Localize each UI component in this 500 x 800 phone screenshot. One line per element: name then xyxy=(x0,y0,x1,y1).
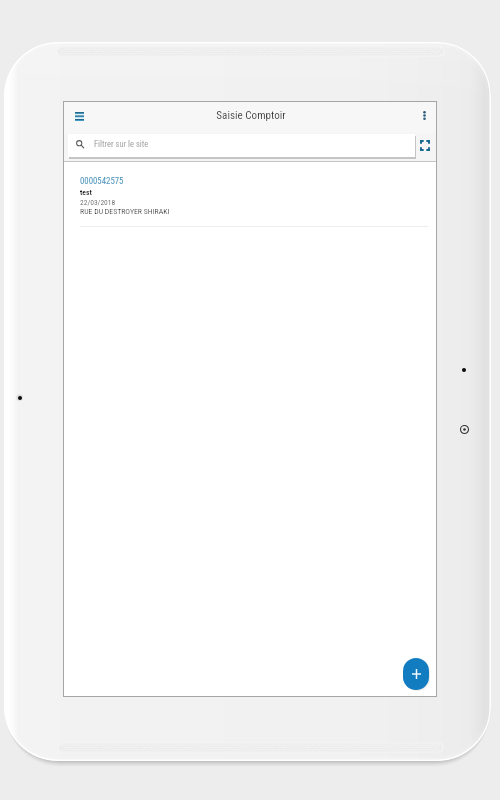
button[interactable]: Filtrer sur le site xyxy=(68,134,415,157)
staticText: 0000542575 xyxy=(80,176,124,186)
staticText: 22/03/2018 xyxy=(80,198,116,207)
button[interactable]: 0000542575 xyxy=(64,162,436,227)
staticText: Saisie Comptoir xyxy=(216,109,286,122)
button[interactable]: Add new entry xyxy=(403,658,429,690)
button[interactable]: More options xyxy=(413,104,435,126)
button[interactable]: Scan barcode xyxy=(414,134,436,156)
staticText: test xyxy=(80,188,92,197)
staticText: RUE DU DESTROYER SHIRAKI xyxy=(80,207,170,216)
button[interactable]: Open navigation menu xyxy=(68,105,90,127)
staticText: Filtrer sur le site xyxy=(94,139,149,149)
